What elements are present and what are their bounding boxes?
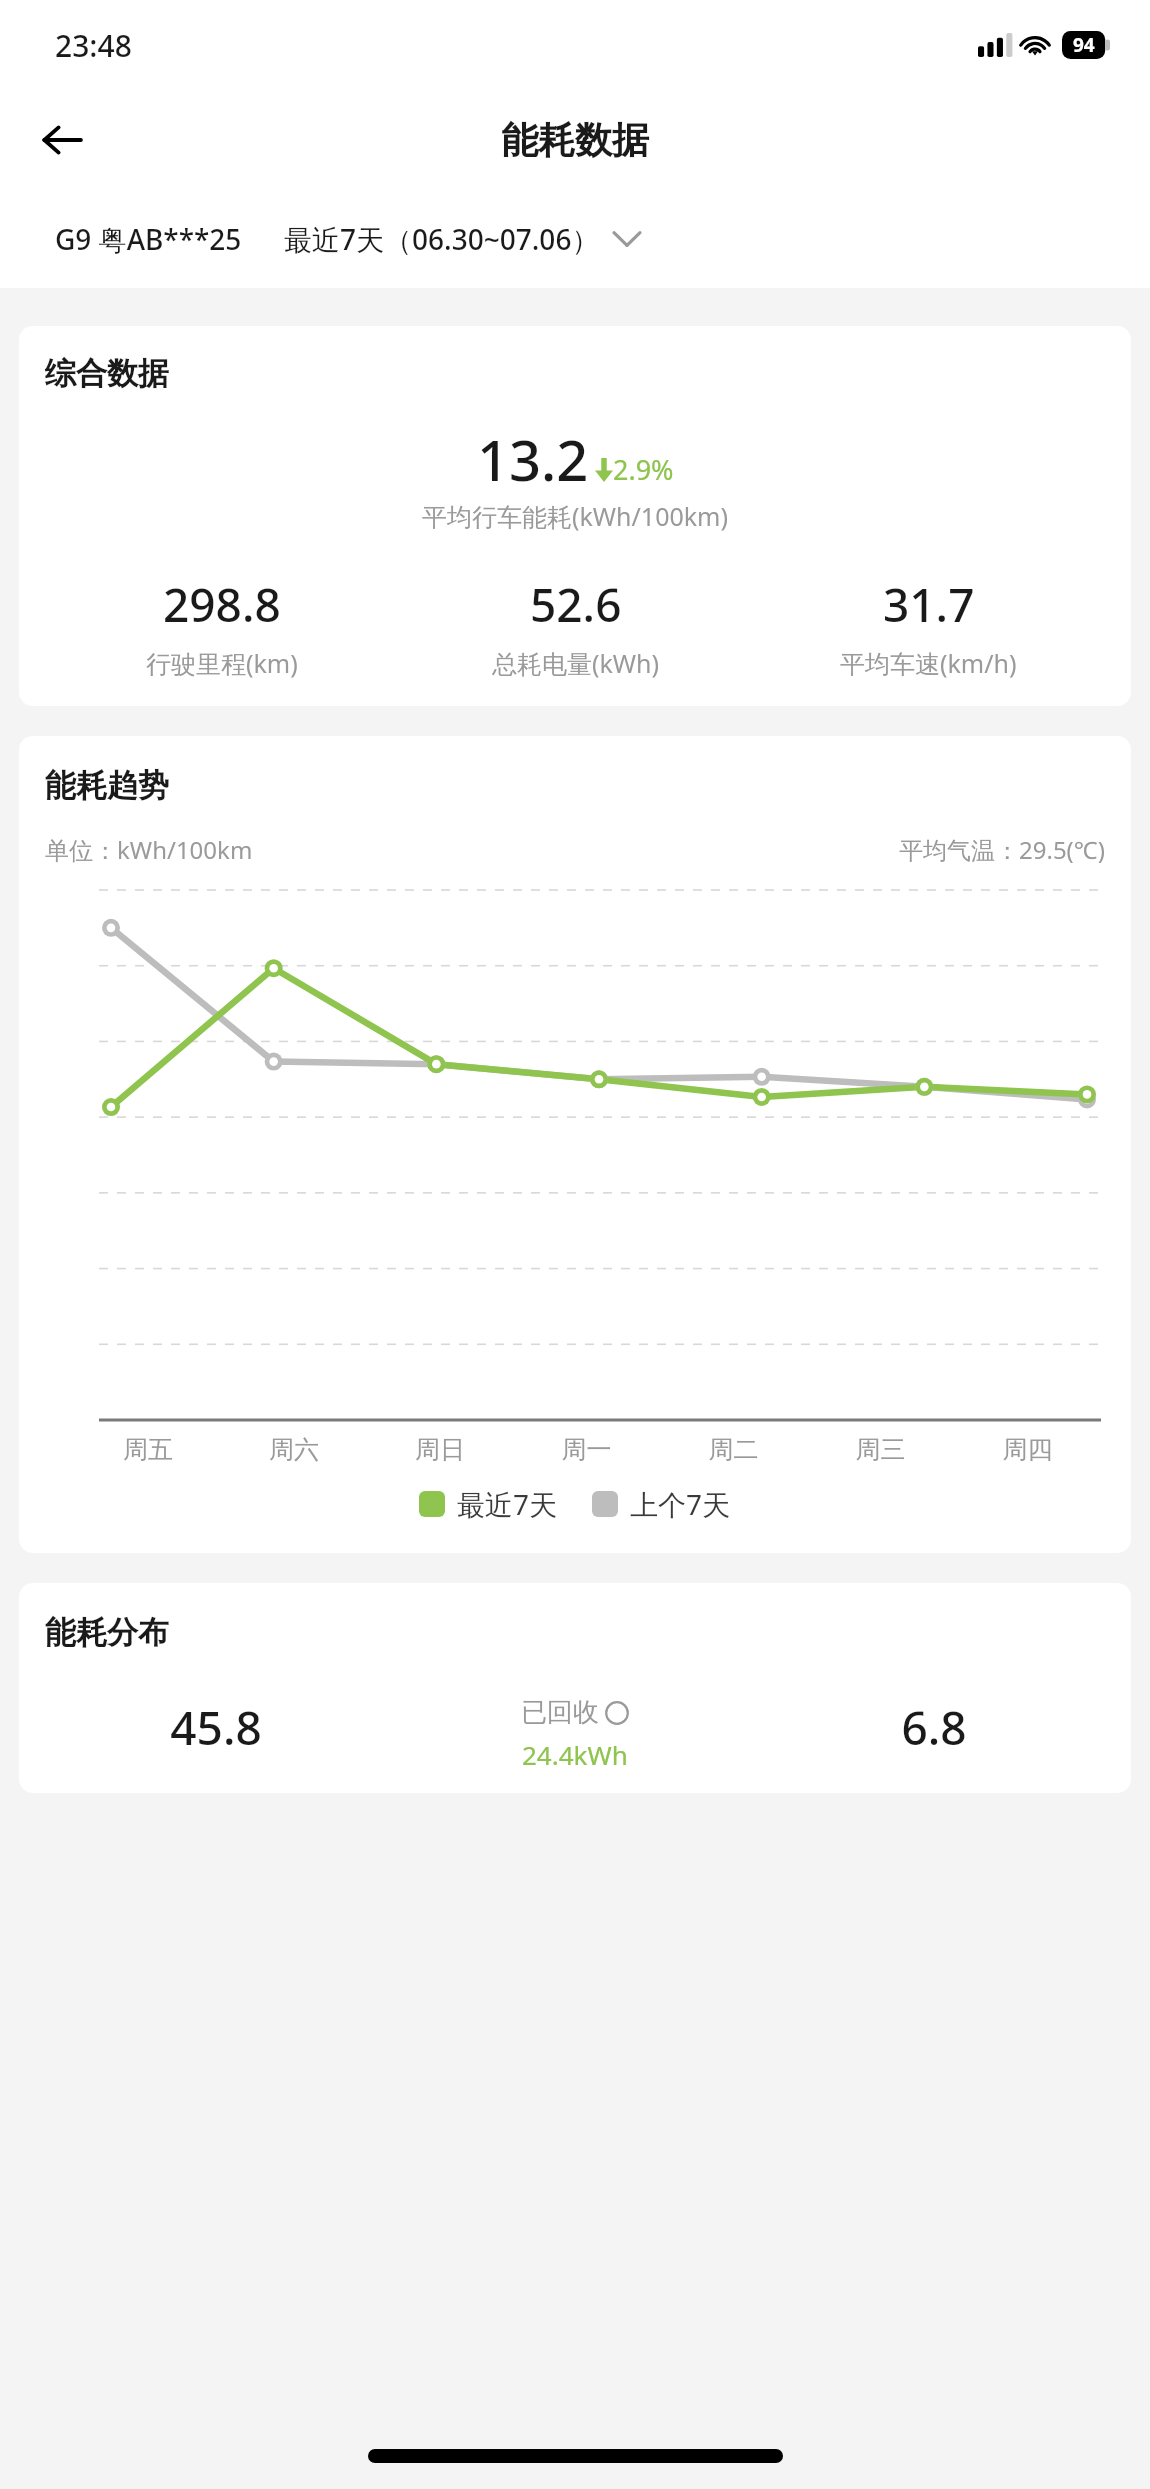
staticText: 24.4kWh (522, 1737, 628, 1772)
staticText: 最近7天 (457, 1485, 558, 1523)
button[interactable]: 最近7天（06.30~07.06） (284, 220, 640, 258)
staticText: 能耗数据 (501, 117, 649, 164)
staticText: 2.9% (613, 451, 674, 488)
staticText: 23:48 (55, 25, 132, 66)
button[interactable]: 能耗分布 (19, 1583, 1131, 1793)
staticText: 单位：kWh/100km (45, 833, 253, 866)
staticText: 平均气温：29.5(℃) (899, 833, 1105, 866)
button[interactable]: Back (30, 108, 94, 172)
staticText: 45.8 (45, 1696, 387, 1759)
staticText: 能耗分布 (45, 1613, 169, 1652)
staticText: 周五 (75, 1434, 221, 1465)
staticText: 52.6 (530, 573, 622, 636)
button[interactable]: 上个7天 (592, 1485, 731, 1523)
button[interactable]: 能耗趋势 (19, 736, 1131, 1553)
staticText: 周六 (221, 1434, 367, 1465)
staticText: 综合数据 (45, 354, 169, 393)
staticText: G9 粤AB***25 (55, 220, 242, 258)
staticText: 13.2 (477, 421, 589, 497)
staticText: 上个7天 (630, 1485, 731, 1523)
staticText: 31.7 (883, 573, 975, 636)
staticText: 周三 (807, 1434, 954, 1465)
button[interactable]: 综合数据 (19, 326, 1131, 706)
staticText: 周二 (660, 1434, 807, 1465)
staticText: 已回收 (521, 1696, 599, 1729)
staticText: 94 (1073, 32, 1095, 58)
staticText: 周一 (513, 1434, 660, 1465)
staticText: 行驶里程(km) (146, 646, 298, 680)
staticText: 平均行车能耗(kWh/100km) (45, 499, 1105, 533)
staticText: 最近7天（06.30~07.06） (284, 220, 600, 258)
staticText: 总耗电量(kWh) (492, 646, 660, 680)
staticText: 平均车速(km/h) (840, 646, 1017, 680)
button[interactable]: 最近7天 (419, 1485, 558, 1523)
staticText: 298.8 (163, 573, 281, 636)
button[interactable]: G9 粤AB***25 (55, 220, 242, 258)
staticText: 6.8 (763, 1696, 1105, 1759)
staticText: 周日 (367, 1434, 513, 1465)
staticText: 周四 (954, 1434, 1101, 1465)
staticText: 能耗趋势 (45, 766, 169, 805)
